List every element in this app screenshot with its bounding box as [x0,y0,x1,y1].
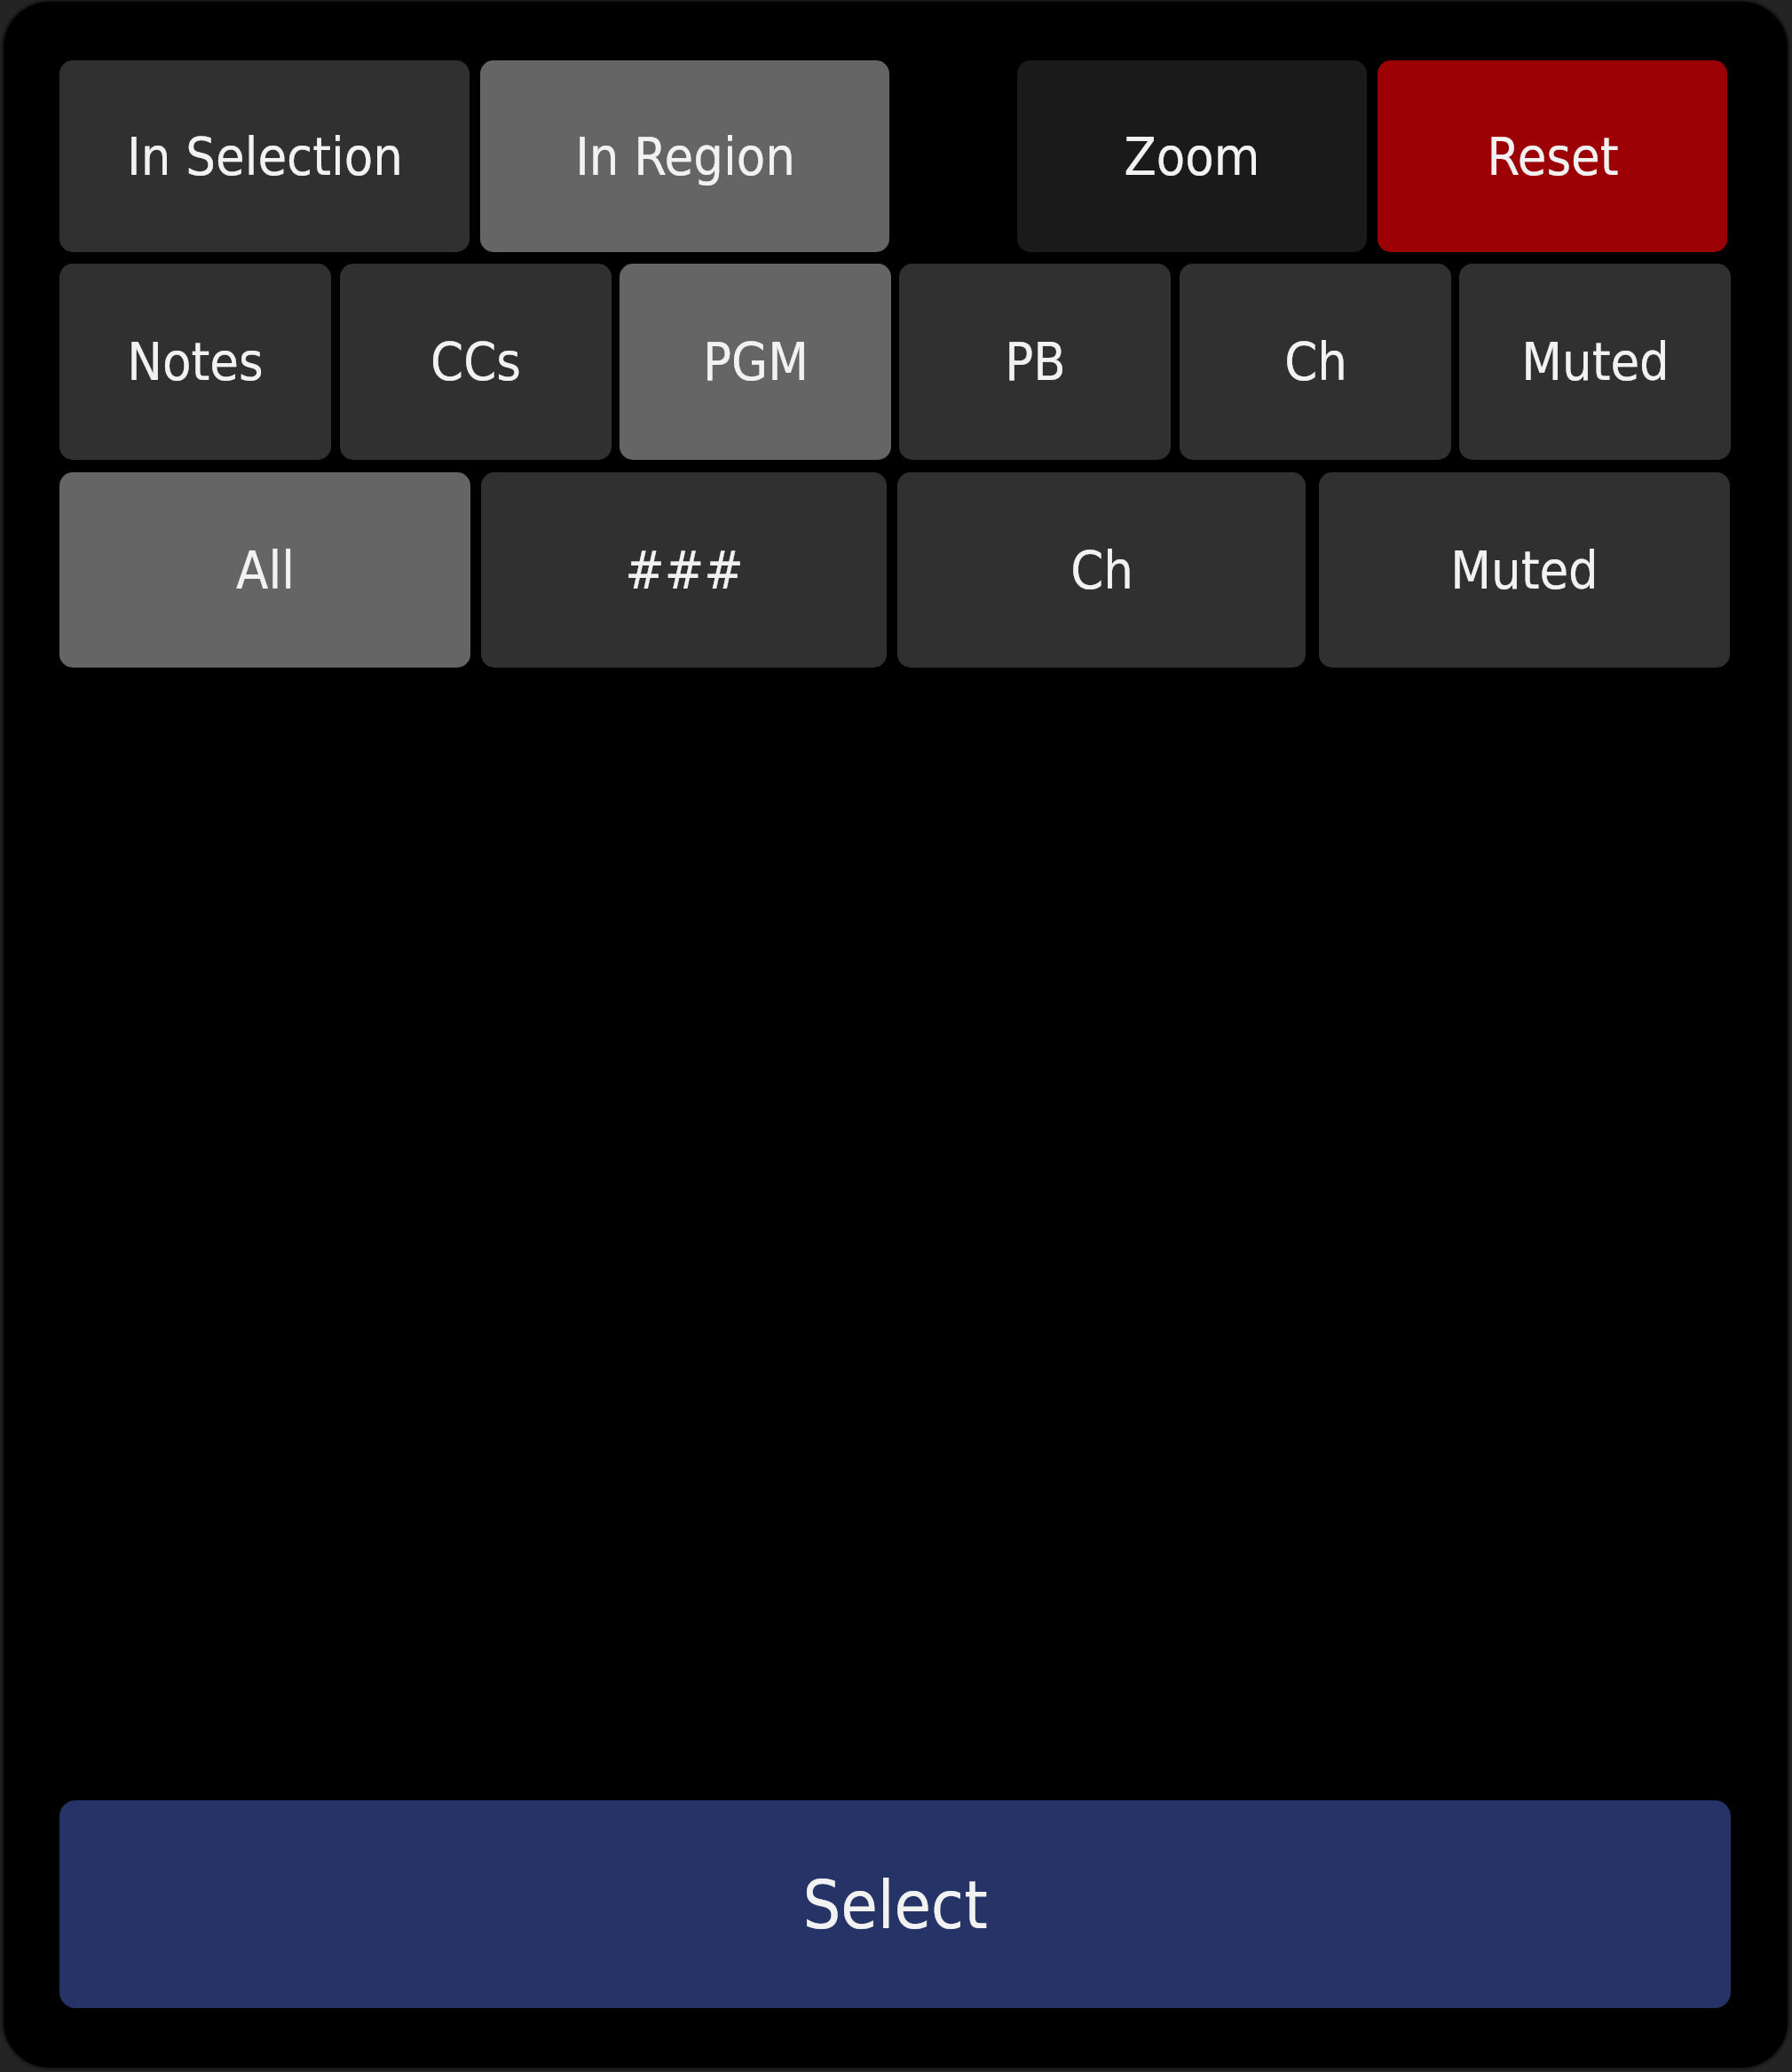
staticText: Muted [1450,540,1599,601]
button[interactable]: Zoom [1017,60,1367,252]
staticText: Ch [1070,540,1133,601]
staticText: Ch [1284,331,1347,392]
staticText: Reset [1487,126,1619,187]
button[interactable]: Ch [897,472,1306,668]
staticText: Zoom [1124,126,1260,187]
button[interactable]: Muted [1459,264,1731,460]
staticText: All [236,540,295,601]
staticText: Muted [1521,331,1670,392]
button[interactable]: Notes [59,264,331,460]
button[interactable]: PB [899,264,1171,460]
button[interactable]: In Selection [59,60,470,252]
button[interactable]: In Region [480,60,889,252]
button[interactable]: All [59,472,470,668]
button[interactable]: Ch [1180,264,1451,460]
staticText: In Selection [127,126,403,187]
staticText: In Region [575,126,795,187]
staticText: Notes [127,331,264,392]
staticText: ### [625,540,744,601]
button[interactable]: Muted [1319,472,1730,668]
staticText: PGM [703,331,809,392]
button[interactable]: CCs [340,264,612,460]
button[interactable]: Select [59,1800,1731,2008]
staticText: CCs [430,331,521,392]
staticText: PB [1005,331,1066,392]
button[interactable]: ### [481,472,887,668]
button[interactable]: Reset [1378,60,1727,252]
button[interactable]: PGM [620,264,891,460]
staticText: Select [802,1866,988,1943]
